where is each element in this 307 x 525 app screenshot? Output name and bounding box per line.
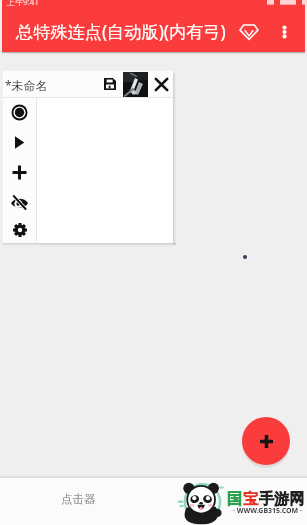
button[interactable]: Screenshot preview: [123, 72, 148, 97]
staticText: 点击器: [61, 492, 96, 506]
button[interactable]: Settings: [3, 217, 36, 242]
button[interactable]: Hide: [3, 187, 36, 217]
staticText: 上午9:41: [7, 0, 39, 7]
staticText: · WWW.GB315.COM ·: [233, 506, 302, 516]
staticText: 国: [227, 489, 243, 508]
staticText: *未命名: [5, 77, 48, 93]
button[interactable]: Play: [3, 127, 36, 157]
staticText: 手游网: [259, 489, 305, 508]
button[interactable]: Favorite: [228, 15, 270, 49]
staticText: 宝: [243, 489, 259, 508]
staticText: 总特殊连点(自动版)(内有弓): [16, 20, 226, 43]
button[interactable]: Save: [100, 74, 120, 94]
button[interactable]: 点击器: [0, 478, 307, 525]
button[interactable]: Add: [242, 417, 290, 465]
button[interactable]: Record: [3, 97, 36, 127]
button[interactable]: Add: [3, 157, 36, 187]
button[interactable]: More options: [270, 18, 298, 46]
button[interactable]: Close: [151, 74, 171, 94]
